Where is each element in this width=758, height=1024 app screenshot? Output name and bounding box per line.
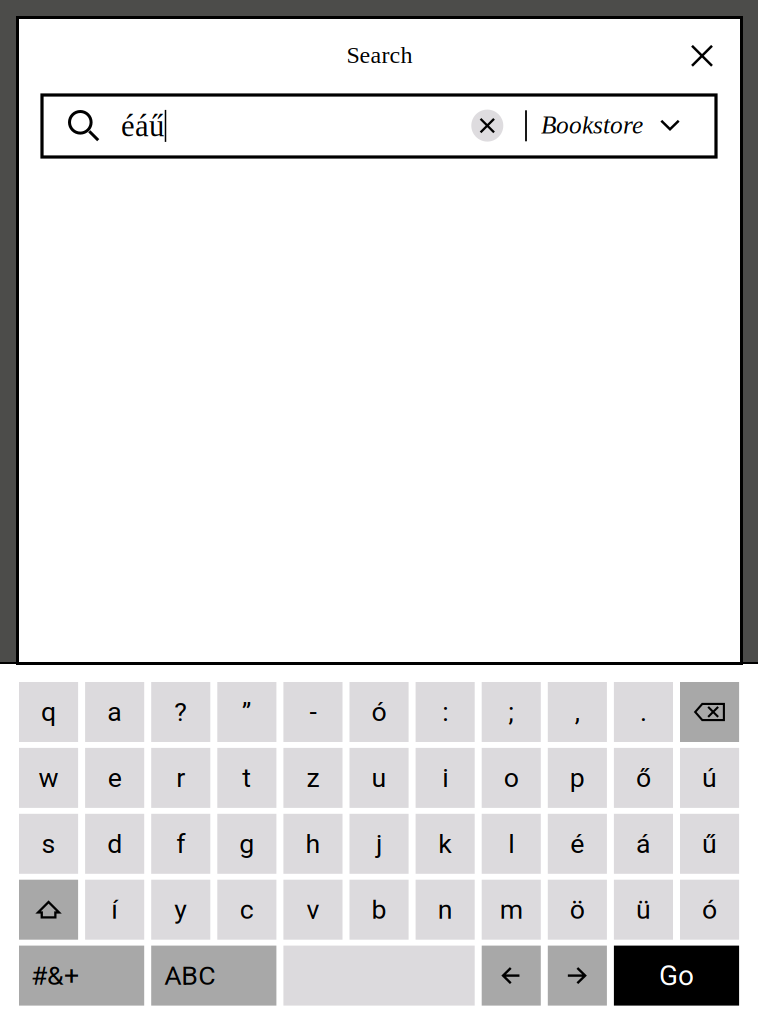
button[interactable]: c	[217, 880, 276, 940]
staticText: a	[107, 696, 122, 728]
button[interactable]: l	[482, 814, 541, 874]
staticText: ABC	[164, 960, 215, 991]
staticText: .	[640, 696, 647, 728]
staticText: ;	[508, 696, 514, 728]
button[interactable]: ő	[614, 748, 673, 808]
staticText: ú	[702, 762, 717, 794]
staticText: t	[242, 762, 251, 794]
button[interactable]: ü	[614, 880, 673, 940]
button[interactable]: Go	[614, 946, 739, 1006]
button[interactable]: í	[85, 880, 144, 940]
button[interactable]: a	[85, 682, 144, 742]
button[interactable]: Move left	[482, 946, 541, 1006]
button[interactable]: á	[614, 814, 673, 874]
staticText: ű	[702, 828, 717, 859]
staticText: o	[504, 762, 519, 794]
staticText: ó	[372, 696, 387, 728]
button[interactable]: ;	[482, 682, 541, 742]
button[interactable]: f	[151, 814, 210, 874]
staticText: í	[111, 894, 118, 925]
button[interactable]: s	[19, 814, 78, 874]
staticText: #&+	[31, 960, 79, 991]
button[interactable]: p	[548, 748, 607, 808]
button[interactable]: Move right	[548, 946, 607, 1006]
button[interactable]: :	[416, 682, 475, 742]
button[interactable]: u	[349, 748, 409, 808]
staticText: r	[176, 762, 185, 794]
button[interactable]: j	[349, 814, 409, 874]
staticText: Go	[659, 959, 694, 992]
button[interactable]: ,	[548, 682, 607, 742]
button[interactable]: Bookstore	[541, 100, 687, 150]
button[interactable]: #&+	[19, 946, 144, 1006]
button[interactable]: Clear text	[463, 102, 511, 150]
button[interactable]: g	[217, 814, 276, 874]
staticText: d	[107, 828, 122, 859]
staticText: -	[309, 696, 316, 728]
button[interactable]: q	[19, 682, 78, 742]
staticText: ü	[636, 894, 651, 925]
button[interactable]: ?	[151, 682, 210, 742]
button[interactable]: -	[283, 682, 342, 742]
button[interactable]: o	[482, 748, 541, 808]
button[interactable]: r	[151, 748, 210, 808]
staticText: n	[438, 894, 453, 925]
button[interactable]: ó	[680, 880, 739, 940]
staticText: c	[240, 894, 254, 925]
staticText: ?	[174, 696, 187, 728]
staticText: Bookstore	[541, 111, 643, 139]
staticText: á	[636, 828, 651, 859]
button[interactable]: i	[416, 748, 475, 808]
staticText: z	[306, 762, 319, 794]
button[interactable]: ”	[217, 682, 276, 742]
button[interactable]: Shift	[19, 880, 78, 940]
button[interactable]: n	[416, 880, 475, 940]
staticText: w	[38, 762, 58, 794]
staticText: é	[570, 828, 584, 859]
staticText: ő	[636, 762, 651, 794]
staticText: m	[500, 894, 523, 925]
button[interactable]: v	[283, 880, 342, 940]
button[interactable]: ö	[548, 880, 607, 940]
staticText: g	[239, 828, 254, 859]
button[interactable]: ABC	[151, 946, 276, 1006]
staticText: k	[438, 828, 452, 859]
staticText: éáű	[121, 109, 164, 143]
staticText: f	[176, 828, 185, 859]
button[interactable]: y	[151, 880, 210, 940]
button[interactable]: e	[85, 748, 144, 808]
staticText: ”	[242, 696, 252, 728]
staticText: ó	[702, 894, 717, 925]
staticText: j	[376, 828, 382, 859]
staticText: l	[508, 828, 514, 859]
staticText: q	[41, 696, 56, 728]
staticText: s	[41, 828, 55, 859]
staticText: i	[442, 762, 448, 794]
staticText: Search	[346, 41, 412, 68]
staticText: e	[108, 762, 122, 794]
staticText: v	[306, 894, 319, 925]
button[interactable]: k	[416, 814, 475, 874]
button[interactable]: z	[283, 748, 342, 808]
staticText: h	[305, 828, 320, 859]
button[interactable]: h	[283, 814, 342, 874]
button[interactable]: t	[217, 748, 276, 808]
staticText: b	[372, 894, 387, 925]
button[interactable]: ú	[680, 748, 739, 808]
staticText: ö	[570, 894, 585, 925]
button[interactable]: m	[482, 880, 541, 940]
button[interactable]: Close	[678, 32, 726, 80]
staticText: y	[174, 894, 187, 925]
staticText: :	[442, 696, 448, 728]
button[interactable]: Delete	[680, 682, 739, 742]
button[interactable]: w	[19, 748, 78, 808]
button[interactable]: .	[614, 682, 673, 742]
button[interactable]: b	[349, 880, 409, 940]
staticText: p	[570, 762, 585, 794]
button[interactable]: ű	[680, 814, 739, 874]
button[interactable]: ó	[349, 682, 409, 742]
staticText: ,	[575, 696, 580, 728]
button[interactable]: d	[85, 814, 144, 874]
button[interactable]: é	[548, 814, 607, 874]
